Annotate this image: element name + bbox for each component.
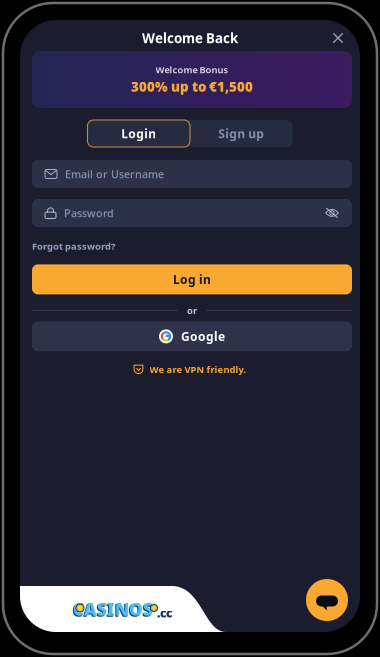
staticText: CASINOS [72, 598, 152, 621]
staticText: Welcome Back [142, 29, 238, 47]
staticText: Sign up [218, 125, 264, 141]
staticText: Password [64, 206, 114, 220]
staticText: Forgot password? [32, 240, 115, 252]
button[interactable]: Forgot password? [32, 240, 115, 252]
staticText: CASINOS [73, 597, 153, 620]
staticText: 300% up to €1,500 [131, 78, 253, 95]
staticText: or [187, 304, 197, 317]
button[interactable]: Close [325, 25, 351, 51]
staticText: .cc [157, 605, 172, 621]
staticText: Login [121, 125, 156, 141]
button[interactable]: Live chat [306, 579, 348, 621]
staticText: We are VPN friendly. [149, 363, 246, 376]
button[interactable]: Login [87, 120, 190, 147]
button[interactable]: Sign up [190, 120, 292, 147]
staticText: Log in [173, 271, 211, 287]
button[interactable]: Password [32, 199, 352, 227]
button[interactable]: Email or Username [32, 160, 352, 188]
staticText: Welcome Bonus [155, 63, 228, 76]
button[interactable]: Log in [32, 264, 352, 294]
button[interactable]: Google [32, 321, 352, 351]
staticText: Google [181, 328, 225, 344]
staticText: Email or Username [65, 167, 164, 181]
